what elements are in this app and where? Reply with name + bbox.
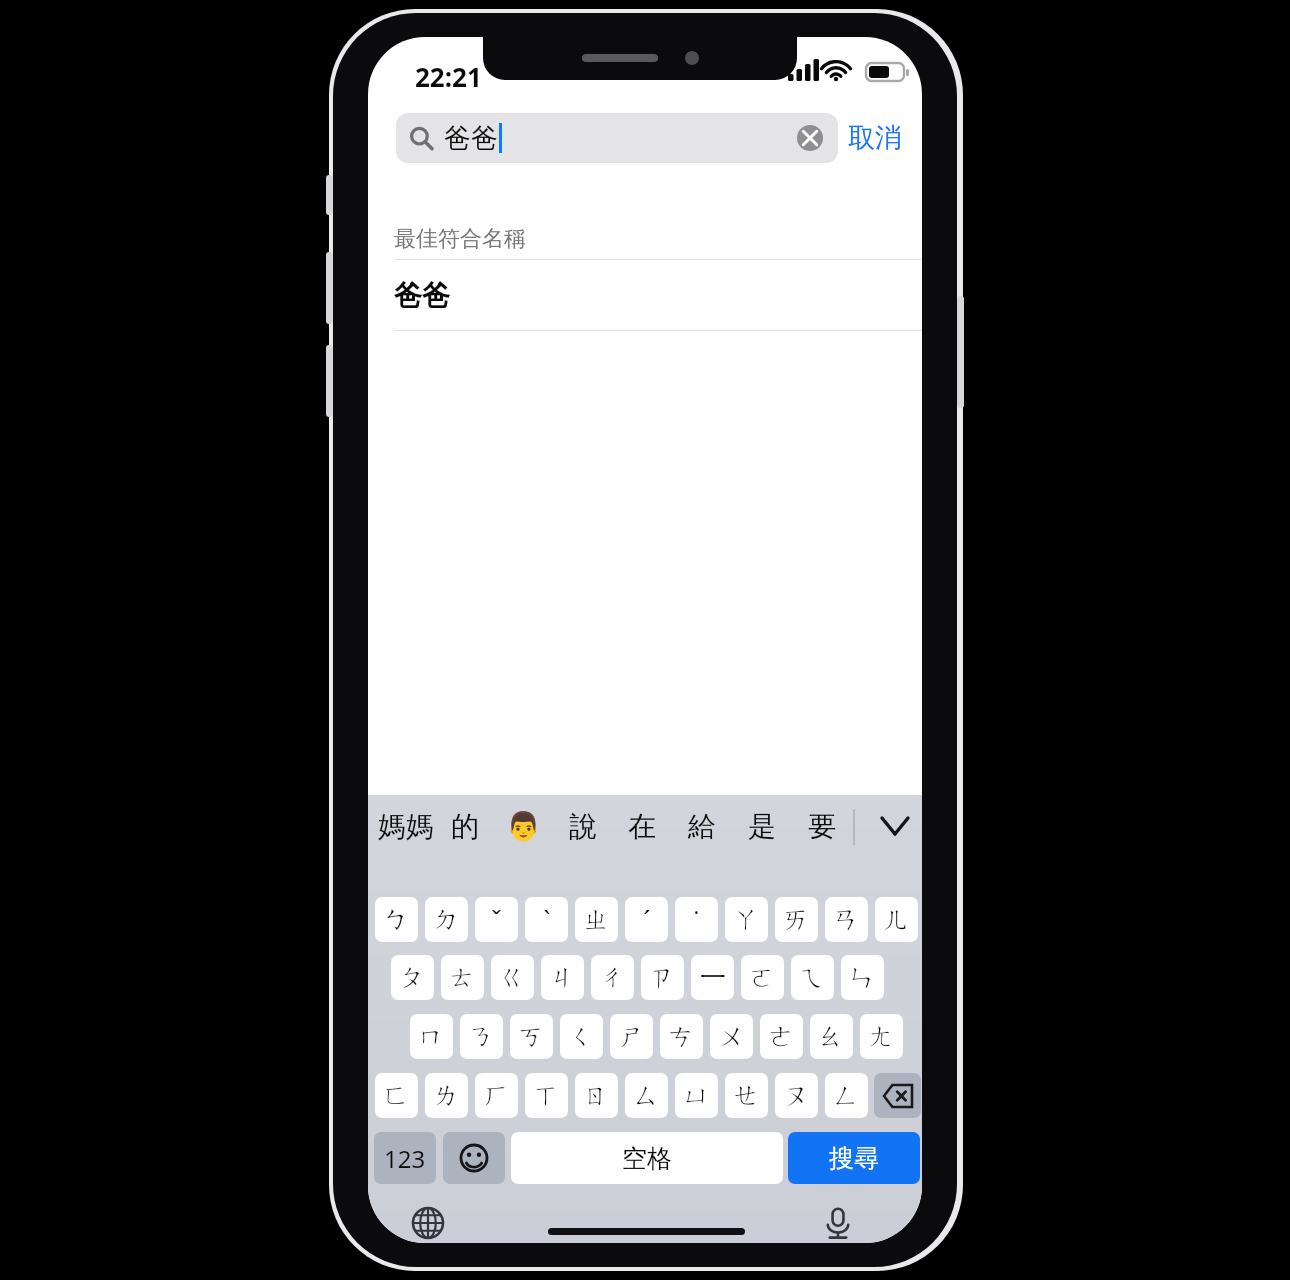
button[interactable]: ㄟ <box>791 955 834 1000</box>
button[interactable]: ㄌ <box>425 1073 468 1118</box>
button[interactable]: Hide keyboard suggestions <box>868 795 922 857</box>
button[interactable]: ㄣ <box>841 955 884 1000</box>
button[interactable]: Switch keyboard language <box>404 1199 452 1243</box>
button[interactable]: ㄨ <box>710 1014 753 1059</box>
staticText: 是 <box>748 809 776 844</box>
button[interactable]: ㄛ <box>741 955 784 1000</box>
button[interactable]: ㄓ <box>575 897 618 942</box>
button[interactable]: ㄔ <box>591 955 634 1000</box>
button[interactable]: ㄢ <box>825 897 868 942</box>
button[interactable]: ㄊ <box>441 955 484 1000</box>
staticText: 媽媽 <box>378 809 434 844</box>
button[interactable]: ㄐ <box>541 955 584 1000</box>
button[interactable]: 的 <box>435 795 494 857</box>
staticText: 說 <box>569 809 597 844</box>
button[interactable]: ㄎ <box>510 1014 553 1059</box>
staticText: ㄜ <box>768 1020 795 1053</box>
button[interactable]: 是 <box>732 795 792 857</box>
button[interactable]: ㄋ <box>460 1014 503 1059</box>
staticText: 最佳符合名稱 <box>394 225 526 253</box>
button[interactable]: 👨 <box>494 795 553 857</box>
button[interactable]: Emoji keyboard <box>443 1132 505 1184</box>
button[interactable]: ㄖ <box>575 1073 618 1118</box>
staticText: 爸爸 <box>444 121 498 155</box>
staticText: ˋ <box>543 902 551 937</box>
staticText: ㄓ <box>583 903 610 936</box>
button[interactable]: ˊ <box>625 897 668 942</box>
button[interactable]: ㄍ <box>491 955 534 1000</box>
button[interactable]: 媽媽 <box>376 795 435 857</box>
staticText: 的 <box>451 809 479 844</box>
button[interactable]: ㄗ <box>641 955 684 1000</box>
staticText: ㄌ <box>433 1079 460 1112</box>
staticText: ˇ <box>491 902 502 937</box>
staticText: ㄔ <box>599 961 626 994</box>
button[interactable]: ˙ <box>675 897 718 942</box>
button[interactable]: ㄙ <box>625 1073 668 1118</box>
button[interactable]: 要 <box>792 795 852 857</box>
button[interactable]: ㄩ <box>675 1073 718 1118</box>
button[interactable]: ˋ <box>525 897 568 942</box>
staticText: ㄍ <box>499 961 526 994</box>
button[interactable]: 給 <box>672 795 732 857</box>
staticText: 22:21 <box>415 59 482 94</box>
button[interactable]: 在 <box>612 795 672 857</box>
button[interactable]: ㄚ <box>725 897 768 942</box>
staticText: ㄩ <box>683 1079 710 1112</box>
button[interactable]: ㄅ <box>375 897 418 942</box>
button[interactable]: 空格 <box>511 1132 783 1184</box>
button[interactable]: 搜尋 <box>788 1132 920 1184</box>
button[interactable]: ㄠ <box>810 1014 853 1059</box>
button[interactable]: ㄞ <box>775 897 818 942</box>
staticText: ㄠ <box>818 1020 845 1053</box>
staticText: ㄈ <box>383 1079 410 1112</box>
staticText: 要 <box>808 809 836 844</box>
staticText: ㄤ <box>868 1020 895 1053</box>
staticText: 空格 <box>622 1143 672 1174</box>
button[interactable]: ㄈ <box>375 1073 418 1118</box>
button[interactable]: 爸爸 <box>368 260 922 330</box>
staticText: ㄊ <box>449 961 476 994</box>
staticText: ㄖ <box>583 1079 610 1112</box>
staticText: ㄐ <box>549 961 576 994</box>
button[interactable]: Dictation <box>814 1199 862 1243</box>
button[interactable]: 123 <box>374 1132 436 1184</box>
button[interactable]: ㄥ <box>825 1073 868 1118</box>
button[interactable]: 一 <box>691 955 734 1000</box>
staticText: ㄇ <box>418 1020 445 1053</box>
staticText: ㄨ <box>718 1020 745 1053</box>
button[interactable]: ㄇ <box>410 1014 453 1059</box>
staticText: ㄎ <box>518 1020 545 1053</box>
button[interactable]: ㄜ <box>760 1014 803 1059</box>
button[interactable]: Clear text <box>794 122 826 154</box>
staticText: ㄆ <box>399 961 426 994</box>
button[interactable]: ㄏ <box>475 1073 518 1118</box>
button[interactable]: ㄤ <box>860 1014 903 1059</box>
staticText: ˊ <box>643 902 651 937</box>
staticText: ㄡ <box>783 1079 810 1112</box>
button[interactable]: ㄘ <box>660 1014 703 1059</box>
button[interactable]: ˇ <box>475 897 518 942</box>
button[interactable]: ㄑ <box>560 1014 603 1059</box>
button[interactable]: ㄝ <box>725 1073 768 1118</box>
button[interactable]: 說 <box>553 795 612 857</box>
button[interactable]: Backspace <box>874 1073 921 1118</box>
staticText: 👨 <box>506 810 541 843</box>
button[interactable]: ㄆ <box>391 955 434 1000</box>
staticText: 搜尋 <box>829 1143 879 1174</box>
button[interactable]: ㄡ <box>775 1073 818 1118</box>
button[interactable]: 取消 <box>838 113 912 163</box>
staticText: 123 <box>384 1142 426 1175</box>
button[interactable]: ㄒ <box>525 1073 568 1118</box>
button[interactable]: ㄉ <box>425 897 468 942</box>
staticText: ㄦ <box>883 903 910 936</box>
staticText: ㄏ <box>483 1079 510 1112</box>
staticText: ㄅ <box>383 903 410 936</box>
button[interactable]: ㄦ <box>875 897 918 942</box>
staticText: ㄉ <box>433 903 460 936</box>
staticText: ㄒ <box>533 1079 560 1112</box>
staticText: ˙ <box>694 902 699 937</box>
button[interactable]: 爸爸 <box>396 113 838 163</box>
button[interactable]: ㄕ <box>610 1014 653 1059</box>
staticText: 爸爸 <box>394 278 450 313</box>
